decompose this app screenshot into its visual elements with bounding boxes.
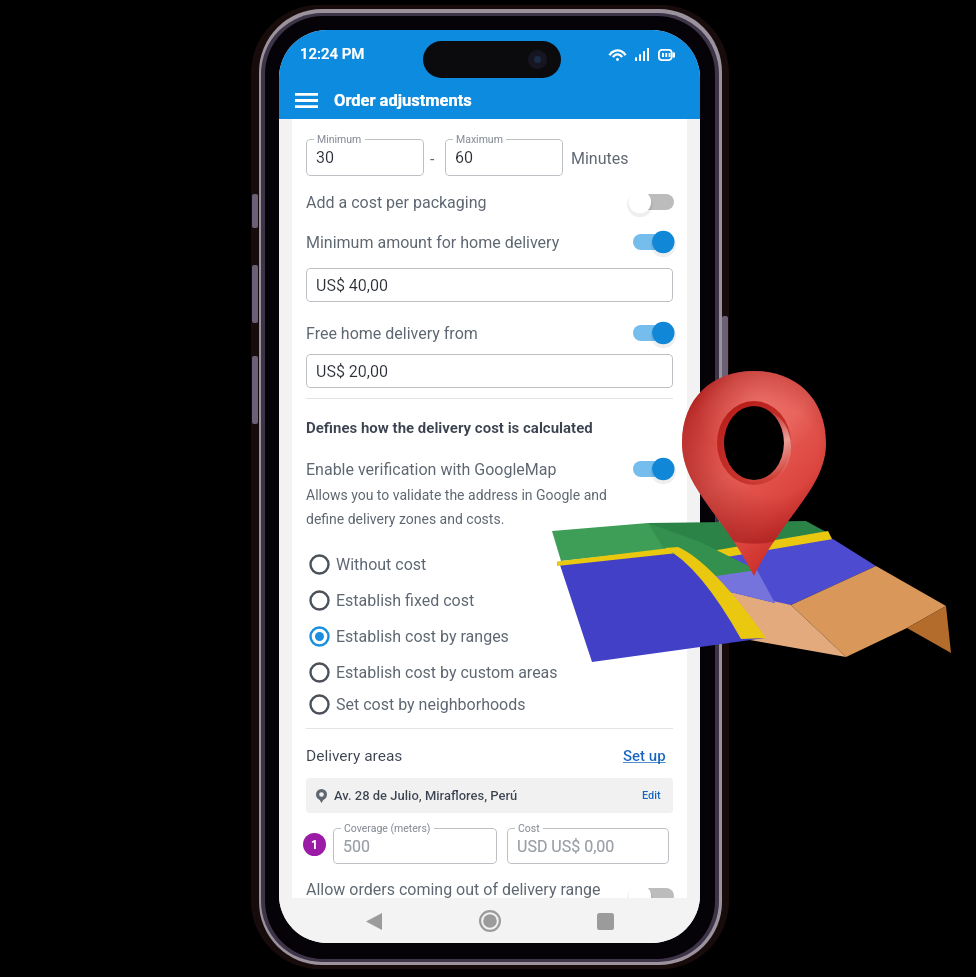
staticText: USD US$ 0,00 xyxy=(517,837,615,856)
staticText: 1 xyxy=(311,838,318,852)
staticText: 30 xyxy=(316,148,334,167)
staticText: US$ 20,00 xyxy=(316,362,388,381)
staticText: Set up xyxy=(623,747,666,765)
staticText: define delivery zones and costs. xyxy=(306,511,505,527)
staticText: Establish cost by custom areas xyxy=(336,663,558,682)
staticText: Cost xyxy=(518,822,540,834)
staticText: Establish fixed cost xyxy=(336,591,475,610)
button[interactable]: Free home delivery from xyxy=(292,318,687,348)
staticText: Order adjustments xyxy=(334,91,472,110)
staticText: 12:24 PM xyxy=(300,45,365,63)
button[interactable]: USD US$ 0,00 xyxy=(507,828,669,864)
button[interactable]: Add a cost per packaging xyxy=(292,187,687,217)
button[interactable]: Establish cost by ranges xyxy=(292,621,687,651)
button[interactable]: Back xyxy=(353,900,395,942)
staticText: Set cost by neighborhoods xyxy=(336,695,526,714)
button[interactable]: Enable verification with GoogleMap xyxy=(292,454,687,484)
staticText: Allow orders coming out of delivery rang… xyxy=(306,880,601,899)
staticText: Minutes xyxy=(571,149,629,168)
button[interactable]: 500 xyxy=(333,828,497,864)
staticText: Defines how the delivery cost is calcula… xyxy=(306,419,593,437)
button[interactable]: Establish fixed cost xyxy=(292,585,687,615)
button[interactable]: Set cost by neighborhoods xyxy=(292,689,687,719)
staticText: Edit xyxy=(642,789,661,802)
staticText: Allows you to validate the address in Go… xyxy=(306,487,607,503)
staticText: Add a cost per packaging xyxy=(306,193,487,212)
staticText: Establish cost by ranges xyxy=(336,627,509,646)
staticText: Enable verification with GoogleMap xyxy=(306,460,557,479)
button[interactable]: 60 xyxy=(445,139,563,176)
staticText: Coverage (meters) xyxy=(344,822,431,834)
staticText: Delivery areas xyxy=(306,747,403,765)
button[interactable]: US$ 40,00 xyxy=(306,268,673,302)
staticText: 60 xyxy=(455,148,473,167)
button[interactable]: Recents xyxy=(584,900,626,942)
staticText: US$ 40,00 xyxy=(316,276,388,295)
button[interactable]: Menu xyxy=(288,82,324,118)
staticText: 500 xyxy=(343,837,370,856)
button[interactable]: 30 xyxy=(306,139,424,176)
button[interactable]: Establish cost by custom areas xyxy=(292,657,687,687)
button[interactable]: US$ 20,00 xyxy=(306,354,673,388)
staticText: Maximum xyxy=(456,133,503,145)
staticText: - xyxy=(430,150,435,169)
button[interactable]: Home xyxy=(469,900,511,942)
staticText: Free home delivery from xyxy=(306,324,478,343)
staticText: Minimum amount for home delivery xyxy=(306,233,560,252)
button[interactable]: Without cost xyxy=(292,549,687,579)
staticText: Without cost xyxy=(336,555,427,574)
staticText: Minimum xyxy=(317,133,362,145)
button[interactable]: Av. 28 de Julio, Miraflores, Perú xyxy=(306,778,673,813)
staticText: Av. 28 de Julio, Miraflores, Perú xyxy=(334,788,518,803)
button[interactable]: Minimum amount for home delivery xyxy=(292,227,687,257)
button[interactable]: Set up xyxy=(621,745,668,767)
